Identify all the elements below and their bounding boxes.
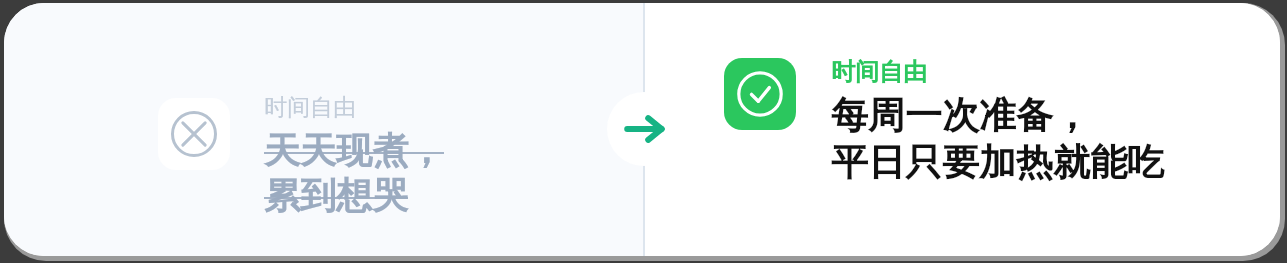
staticText: 累到想哭 <box>264 173 408 218</box>
button[interactable]: Time freedom achieved <box>724 58 796 130</box>
staticText: 平日只要加热就能吃 <box>831 139 1164 186</box>
button[interactable]: Time freedom achieved <box>645 3 1280 256</box>
button[interactable]: Not free <box>4 3 643 256</box>
staticText: 时间自由 <box>831 57 927 87</box>
staticText: 每周一次准备， <box>831 92 1090 139</box>
staticText: 天天现煮， <box>264 128 444 173</box>
button[interactable]: Transform <box>607 92 681 166</box>
button[interactable]: Not free <box>158 98 230 170</box>
staticText: 时间自由 <box>264 93 356 122</box>
